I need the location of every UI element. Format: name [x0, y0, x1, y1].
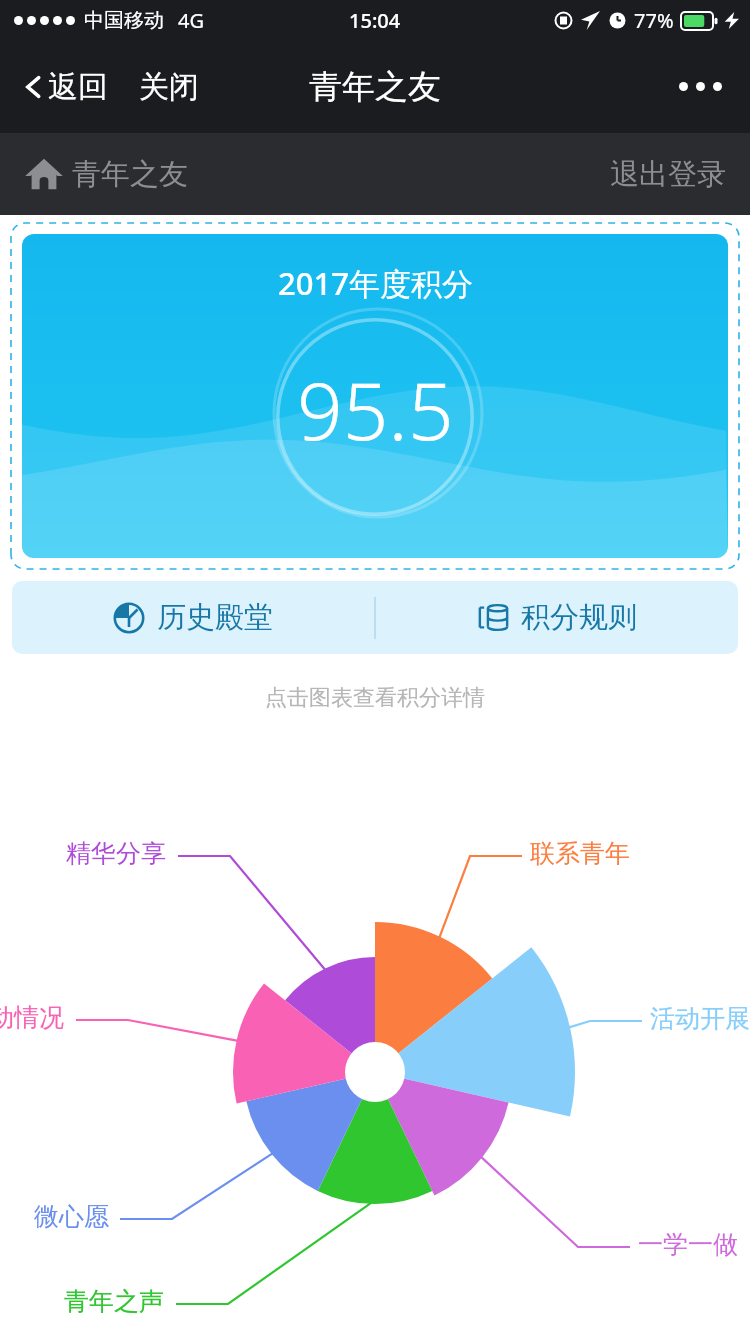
staticText: 95.5 [297, 354, 454, 463]
button[interactable]: 关闭 [133, 60, 205, 114]
staticText: 微心愿 [34, 1201, 109, 1232]
staticText: 活动开展 [650, 1003, 750, 1034]
staticText: 4G [178, 7, 204, 34]
staticText: 青年之友 [309, 66, 441, 108]
button[interactable]: 退出登录 [606, 152, 730, 197]
staticText: 点击图表查看积分详情 [0, 684, 750, 712]
button[interactable]: 积分规则 [376, 581, 738, 654]
staticText: 历史殿堂 [157, 599, 273, 636]
staticText: 2017年度积分 [278, 262, 473, 304]
staticText: 互动情况 [0, 1002, 64, 1033]
staticText: 青年之友 [72, 156, 188, 193]
button[interactable]: More options [671, 74, 730, 99]
button[interactable]: 2017年度积分 [22, 234, 728, 558]
staticText: 关闭 [139, 68, 199, 106]
button[interactable]: 青年之友 [20, 150, 192, 198]
staticText: 联系青年 [530, 838, 630, 869]
staticText: 中国移动 [84, 8, 164, 33]
staticText: 77% [634, 7, 674, 34]
staticText: 15:04 [349, 7, 401, 34]
button[interactable]: Points breakdown chart [0, 0, 750, 1334]
button[interactable]: 历史殿堂 [12, 581, 374, 654]
staticText: 退出登录 [610, 156, 726, 193]
staticText: 返回 [48, 68, 108, 106]
staticText: 青年之声 [64, 1286, 164, 1317]
staticText: 一学一做 [638, 1229, 738, 1260]
staticText: 精华分享 [66, 838, 166, 869]
button[interactable]: 返回 [16, 60, 112, 114]
staticText: 积分规则 [521, 599, 637, 636]
